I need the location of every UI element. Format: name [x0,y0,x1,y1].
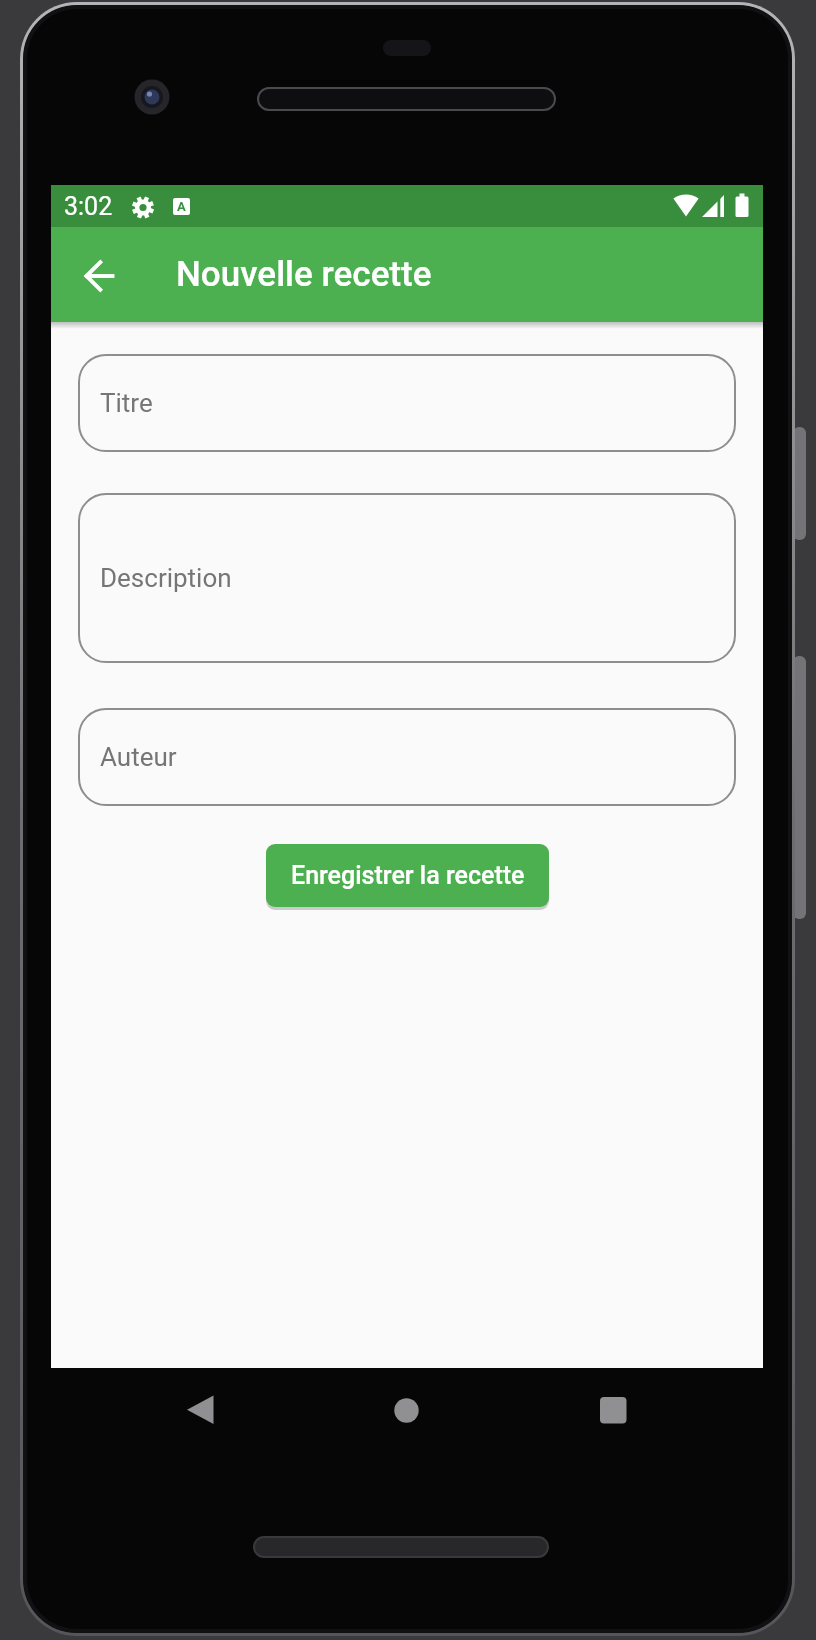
staticText: 3:02 [64,192,113,221]
staticText: Enregistrer la recette [291,861,525,890]
staticText: Titre [100,388,153,418]
button[interactable]: Titre [78,354,736,452]
button[interactable]: Description [78,493,736,663]
button[interactable]: Auteur [78,708,736,806]
staticText: Description [100,563,232,593]
staticText: Auteur [100,742,177,772]
button[interactable] [51,227,146,322]
button[interactable]: Enregistrer la recette [266,844,549,907]
staticText: A [177,199,186,214]
staticText: Nouvelle recette [176,254,432,295]
